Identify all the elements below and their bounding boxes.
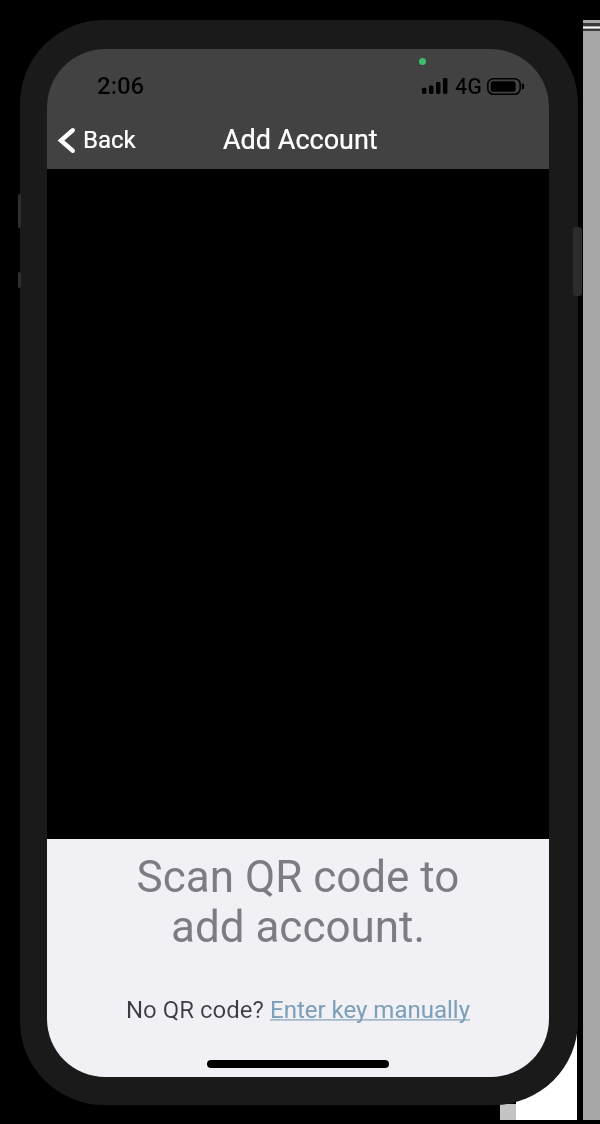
staticText: Add Account: [223, 124, 378, 156]
staticText: 2:06: [97, 72, 145, 100]
staticText: No QR code?: [126, 996, 270, 1024]
staticText: Enter key manually: [270, 996, 471, 1024]
staticText: Back: [83, 126, 136, 154]
staticText: 4G: [455, 74, 482, 99]
button[interactable]: Back: [47, 120, 150, 160]
button[interactable]: Enter key manually: [270, 996, 471, 1024]
staticText: Scan QR code to add account.: [47, 851, 549, 952]
other: Back: [58, 128, 75, 153]
